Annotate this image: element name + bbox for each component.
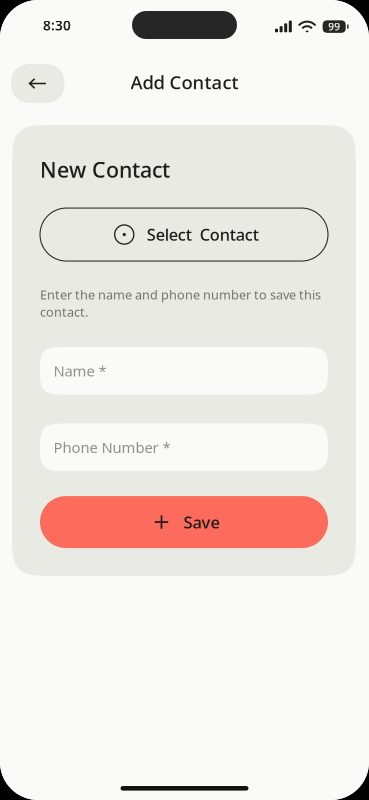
staticText: 8:30 (43, 16, 71, 34)
button[interactable]: Save (40, 496, 328, 548)
staticText: Add Contact (130, 69, 238, 95)
button[interactable]: Phone Number * (40, 424, 328, 471)
staticText: Enter the name and phone number to save … (40, 286, 321, 321)
button[interactable]: Select Contact (40, 208, 328, 261)
staticText: Save (183, 511, 219, 533)
button[interactable]: Back (11, 61, 64, 103)
staticText: New Contact (40, 155, 170, 184)
button[interactable]: Name * (40, 347, 328, 395)
staticText: 99 (328, 20, 340, 33)
staticText: Name * (53, 361, 106, 381)
staticText: Phone Number * (53, 437, 170, 457)
staticText: Select Contact (147, 223, 259, 246)
